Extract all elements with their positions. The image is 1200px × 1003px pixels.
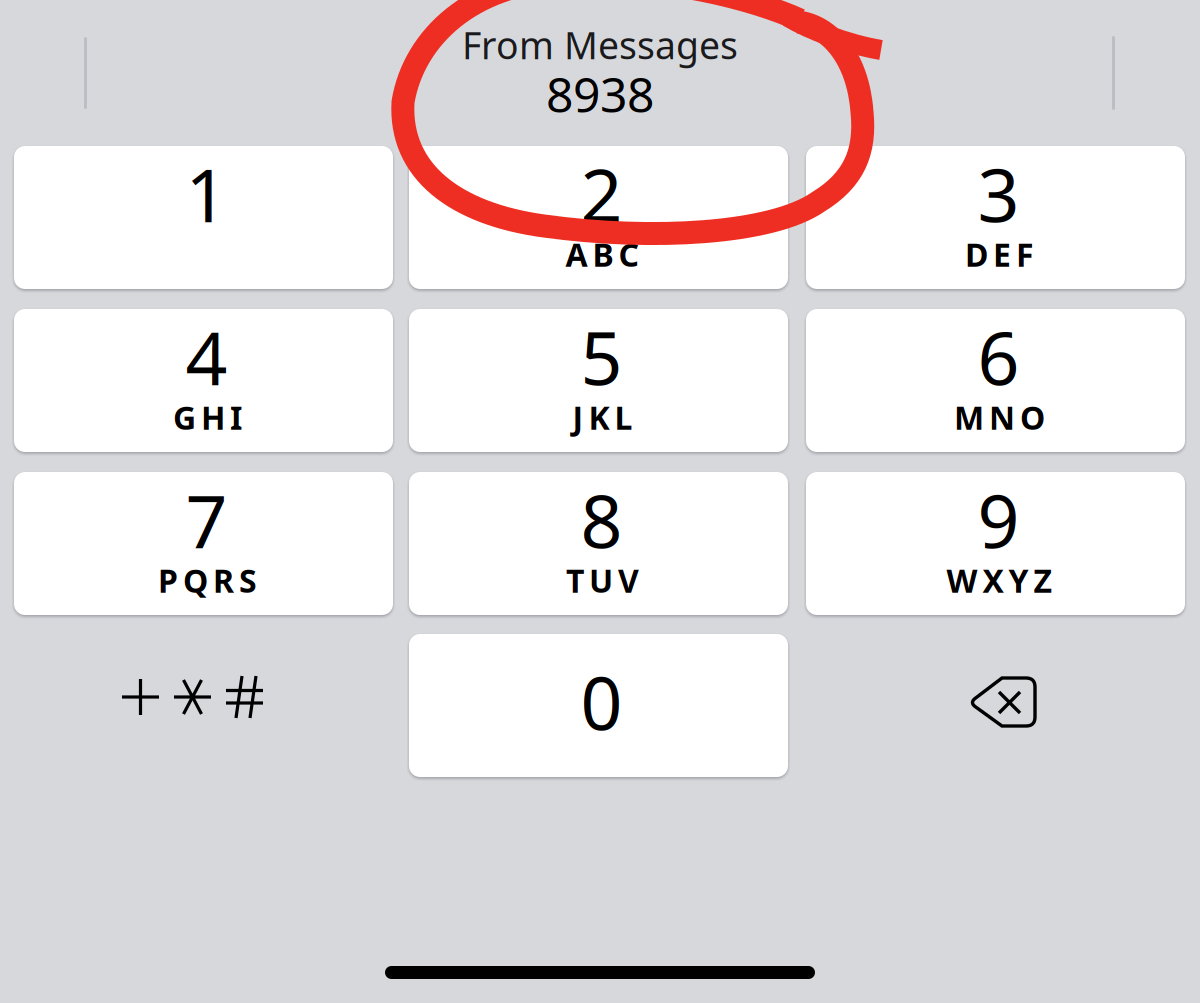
button[interactable]: 2 [409, 146, 788, 289]
button[interactable]: 9 [806, 472, 1185, 615]
staticText: 6 [977, 308, 1019, 405]
staticText: A B C [565, 233, 639, 275]
staticText: W X Y Z [946, 559, 1052, 601]
staticText: 9 [977, 471, 1019, 568]
button[interactable]: 8 [409, 472, 788, 615]
button[interactable]: 7 [14, 472, 393, 615]
button[interactable]: 5 [409, 309, 788, 452]
button[interactable]: Delete [806, 634, 1185, 777]
button[interactable]: 1 [14, 146, 393, 289]
staticText: 3 [977, 145, 1019, 242]
staticText: 2 [580, 145, 622, 242]
staticText: G H I [173, 396, 242, 438]
staticText: M N O [954, 396, 1045, 438]
staticText: 0 [580, 653, 622, 750]
button[interactable]: 0 [409, 634, 788, 777]
button[interactable]: From Messages [90, 0, 1110, 118]
staticText: 4 [185, 308, 227, 405]
staticText: T U V [566, 559, 639, 601]
button[interactable]: 6 [806, 309, 1185, 452]
staticText: P Q R S [158, 559, 257, 601]
staticText: 8938 [546, 62, 654, 126]
button[interactable]: 4 [14, 309, 393, 452]
staticText: 7 [185, 471, 227, 568]
staticText: 1 [185, 145, 227, 242]
staticText: D E F [965, 233, 1034, 275]
staticText: From Messages [462, 20, 738, 70]
staticText: 8 [580, 471, 622, 568]
staticText: 5 [580, 308, 622, 405]
button[interactable]: 3 [806, 146, 1185, 289]
staticText: J K L [572, 396, 632, 438]
button[interactable]: Plus asterisk pound [14, 634, 393, 777]
